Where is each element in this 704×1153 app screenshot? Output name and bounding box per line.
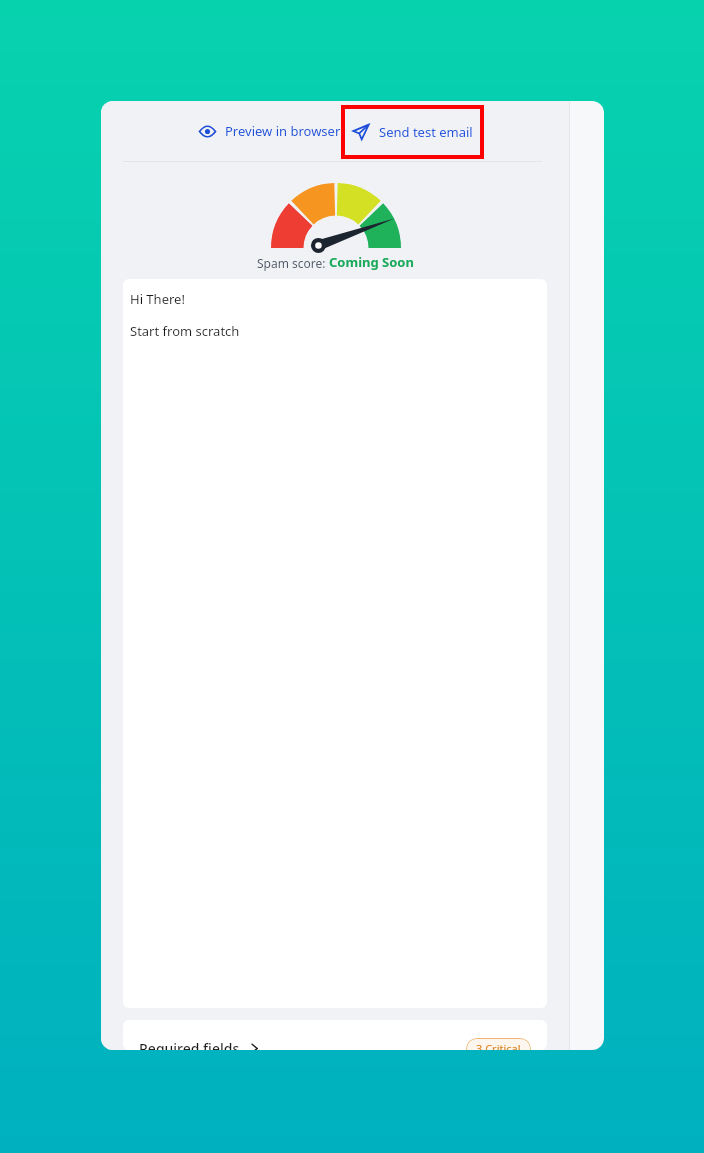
staticText: Start from scratch	[130, 322, 240, 340]
staticText: Required fields	[139, 1039, 240, 1050]
button[interactable]: Required fields	[123, 1020, 547, 1050]
staticText: Hi There!	[130, 290, 185, 308]
button[interactable]: Hi There!	[123, 279, 547, 1008]
button[interactable]: Preview in browser	[195, 116, 345, 146]
button[interactable]: Send test email	[345, 109, 480, 155]
staticText: Spam score:	[257, 255, 329, 271]
other: Preview in browser	[199, 123, 216, 140]
staticText: Send test email	[379, 123, 473, 141]
staticText: 3 Critical	[476, 1041, 521, 1050]
staticText: Preview in browser	[225, 122, 341, 140]
other: Send test email	[352, 123, 370, 141]
staticText: Coming Soon	[329, 253, 414, 271]
